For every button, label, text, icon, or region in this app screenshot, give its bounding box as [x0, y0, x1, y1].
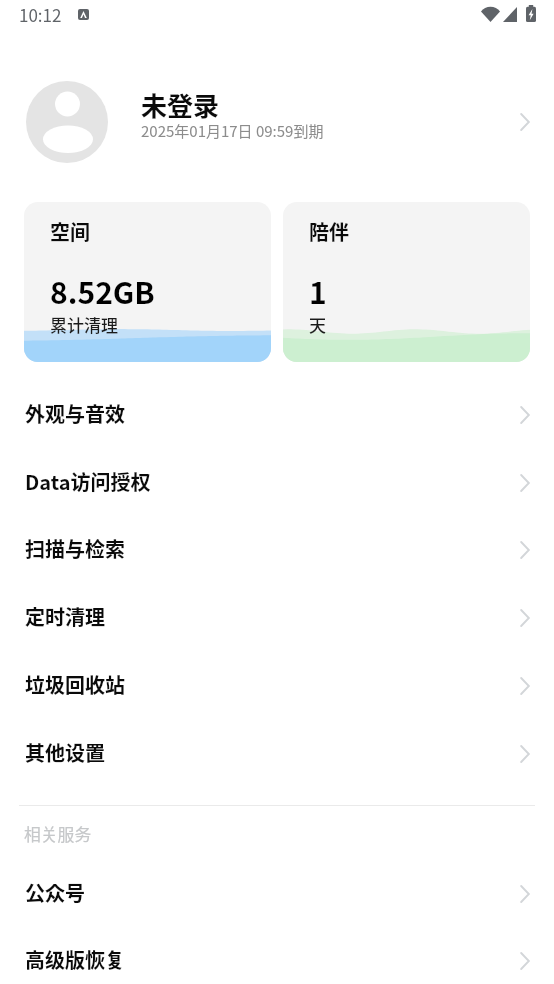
button[interactable]: 其他设置 [0, 718, 554, 786]
staticText: 外观与音效 [25, 399, 125, 428]
staticText: 空间 [50, 217, 90, 246]
button[interactable]: 未登录 [0, 70, 554, 175]
button[interactable]: 定时清理 [0, 582, 554, 650]
staticText: Data访问授权 [25, 467, 151, 496]
staticText: 相关服务 [24, 822, 92, 846]
button[interactable]: 垃圾回收站 [0, 650, 554, 718]
staticText: 天 [309, 312, 326, 337]
staticText: 1 [309, 269, 327, 312]
staticText: 高级版恢复 [25, 945, 125, 974]
button[interactable]: 外观与音效 [0, 379, 554, 447]
button[interactable]: 空间 [24, 202, 271, 362]
button[interactable]: 陪伴 [283, 202, 530, 362]
staticText: 陪伴 [309, 217, 349, 246]
staticText: 8.52GB [50, 269, 155, 312]
button[interactable]: 公众号 [0, 858, 554, 926]
staticText: 扫描与检索 [25, 534, 125, 563]
staticText: 累计清理 [50, 312, 118, 337]
button[interactable]: 高级版恢复 [0, 925, 554, 984]
staticText: 定时清理 [25, 602, 105, 631]
button[interactable]: 扫描与检索 [0, 514, 554, 582]
staticText: 未登录 [141, 86, 220, 124]
staticText: 垃圾回收站 [25, 670, 125, 699]
staticText: 10:12 [19, 2, 62, 27]
staticText: 公众号 [25, 878, 85, 907]
button[interactable]: Data访问授权 [0, 447, 554, 515]
staticText: 2025年01月17日 09:59到期 [141, 120, 324, 142]
staticText: 其他设置 [25, 738, 105, 767]
